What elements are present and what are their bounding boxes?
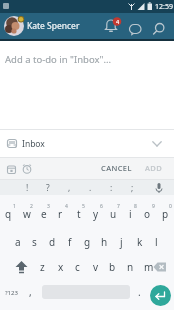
staticText: ? [46,182,50,194]
button[interactable]: j [113,230,130,254]
staticText: k [137,235,143,249]
staticText: ; [131,182,134,194]
button[interactable]: h [96,230,113,254]
button[interactable] [151,22,166,37]
button[interactable]: : [103,180,119,195]
staticText: b [109,260,116,274]
button[interactable]: s [26,230,43,254]
button[interactable]: CANCEL [101,159,132,177]
staticText: : [110,182,113,194]
button[interactable]: m [140,255,157,279]
staticText: t [77,207,81,221]
staticText: . [89,182,92,194]
staticText: . [138,285,141,299]
button[interactable]: . [82,180,98,195]
button[interactable] [153,182,165,194]
staticText: Inbox [22,138,45,150]
button[interactable]: ; [124,180,140,195]
staticText: s [32,235,37,249]
staticText: 3 [47,203,50,210]
staticText: , [29,285,32,299]
staticText: 0 [169,203,172,210]
staticText: e [41,207,47,221]
button[interactable] [128,22,143,37]
button[interactable]: w [18,201,35,227]
button[interactable]: ADD [132,159,174,177]
staticText: d [49,235,56,249]
staticText: z [40,260,45,274]
button[interactable]: p [157,201,174,227]
button[interactable]: z [34,255,51,279]
button[interactable]: , [61,180,77,195]
staticText: 5 [82,203,85,210]
button[interactable]: y [87,201,104,227]
staticText: a [15,235,21,249]
button[interactable]: 4 [103,15,123,37]
button[interactable]: . [132,281,146,303]
button[interactable] [150,285,171,306]
button[interactable]: Inbox [0,130,174,157]
button[interactable]: r [52,201,69,227]
button[interactable]: f [61,230,78,254]
button[interactable] [8,255,34,279]
staticText: h [101,235,108,249]
button[interactable]: u [105,201,122,227]
staticText: 8 [134,203,137,210]
button[interactable]: t [70,201,87,227]
staticText: v [93,260,99,274]
button[interactable] [147,255,173,279]
button[interactable]: d [44,230,61,254]
button[interactable]: g [79,230,96,254]
staticText: 2 [30,203,33,210]
staticText: 6 [100,203,103,210]
staticText: l [155,235,158,249]
staticText: m [144,260,154,274]
staticText: i [129,207,132,221]
staticText: f [68,235,72,249]
button[interactable] [5,163,17,175]
staticText: Add a to-do in "Inbox"... [5,53,112,66]
button[interactable]: q [0,201,17,227]
staticText: j [120,235,123,249]
staticText: 4 [65,203,68,210]
staticText: CANCEL [101,163,132,173]
button[interactable]: ?123 [0,282,22,304]
button[interactable]: v [87,255,104,279]
staticText: y [93,207,99,221]
staticText: x [58,260,64,274]
staticText: 7 [117,203,120,210]
button[interactable]: n [122,255,139,279]
staticText: Kate Spencer [27,20,80,32]
staticText: q [5,207,12,221]
button[interactable]: k [131,230,148,254]
button[interactable]: a [9,230,26,254]
staticText: w [23,207,31,221]
staticText: 4 [116,18,120,25]
staticText: p [162,207,169,221]
staticText: ?123 [5,289,18,297]
staticText: o [144,207,151,221]
button[interactable]: ! [19,180,35,195]
staticText: ! [26,182,29,194]
staticText: 9 [152,203,155,210]
button[interactable]: l [148,230,165,254]
staticText: n [127,260,134,274]
button[interactable]: c [69,255,86,279]
staticText: r [58,207,63,221]
staticText: ADD [145,163,163,173]
staticText: 12:59 [155,2,173,12]
staticText: 1 [13,203,16,210]
button[interactable] [4,16,24,36]
button[interactable]: o [139,201,156,227]
button[interactable]: e [35,201,52,227]
button[interactable]: ? [40,180,56,195]
button[interactable]: , [23,281,37,303]
staticText: g [84,235,91,249]
button[interactable]: x [52,255,69,279]
staticText: u [110,207,117,221]
button[interactable]: i [122,201,139,227]
button[interactable]: b [104,255,121,279]
button[interactable] [21,163,33,175]
staticText: c [75,260,80,274]
